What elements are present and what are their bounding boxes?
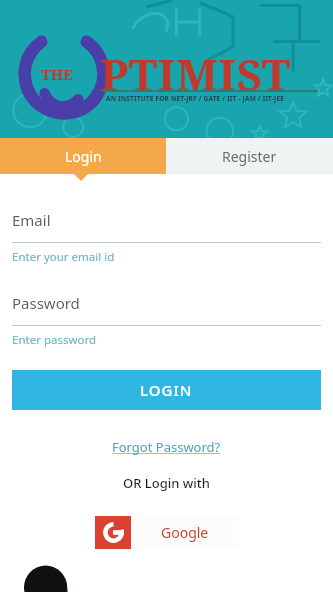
button[interactable]: Google [95,516,239,549]
staticText: Email [12,210,51,230]
staticText: Login [65,147,102,166]
staticText: PTIMIST [100,44,291,104]
staticText: LOGIN [140,380,193,400]
staticText: Enter password [12,332,97,348]
staticText: Register [222,147,277,166]
staticText: THE [41,64,73,84]
button[interactable]: LOGIN [12,370,321,410]
staticText: Password [12,293,80,313]
button[interactable]: Register [166,138,333,174]
button[interactable]: Login [0,138,166,174]
staticText: Forgot Password? [112,438,221,456]
staticText: OR Login with [123,474,210,492]
staticText: Enter your email id [12,249,115,265]
staticText: Google [161,523,209,542]
staticText: AN INSTITUTE FOR NET-JRF / GATE / IIT - … [106,94,285,103]
button[interactable]: Forgot Password? [108,434,225,460]
